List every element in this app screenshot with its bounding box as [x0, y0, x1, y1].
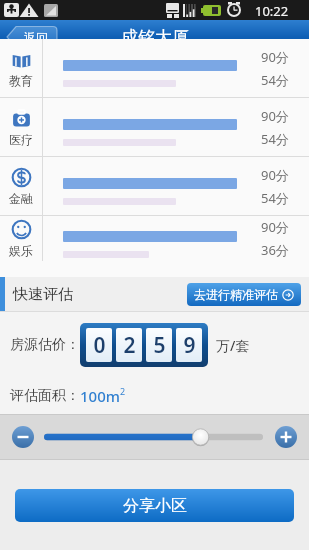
staticText: 房源估价：: [10, 336, 80, 354]
staticText: 10:22: [255, 2, 289, 20]
button[interactable]: 增加面积: [275, 426, 297, 448]
staticText: 100m: [80, 386, 120, 406]
staticText: 54分: [261, 189, 289, 207]
staticText: 90分: [261, 218, 289, 236]
button[interactable]: 金融: [0, 157, 309, 215]
staticText: 90分: [261, 166, 289, 184]
staticText: 90分: [261, 107, 289, 125]
button[interactable]: 去进行精准评估: [187, 283, 301, 306]
button[interactable]: 分享小区: [15, 489, 294, 522]
button[interactable]: 减少面积: [12, 426, 34, 448]
staticText: 0: [93, 331, 106, 360]
button[interactable]: 医疗: [0, 98, 309, 156]
staticText: 9: [183, 331, 196, 360]
staticText: 评估面积：: [10, 387, 80, 405]
button[interactable]: 娱乐: [0, 216, 309, 261]
staticText: 去进行精准评估: [194, 287, 278, 302]
staticText: 5: [153, 331, 166, 360]
staticText: 36分: [261, 241, 289, 259]
staticText: 分享小区: [123, 496, 187, 516]
staticText: 90分: [261, 48, 289, 66]
staticText: 2: [120, 385, 126, 397]
staticText: 54分: [261, 71, 289, 89]
staticText: 2: [123, 331, 136, 360]
staticText: 金融: [9, 191, 33, 206]
staticText: 54分: [261, 130, 289, 148]
staticText: 返回: [24, 30, 48, 45]
staticText: 万/套: [216, 336, 250, 355]
staticText: 快速评估: [13, 285, 73, 304]
staticText: 娱乐: [9, 243, 33, 258]
button[interactable]: 面积滑块: [44, 425, 263, 449]
button[interactable]: 返回: [7, 25, 57, 49]
button[interactable]: 教育: [0, 39, 309, 97]
staticText: 教育: [9, 73, 33, 88]
staticText: 成铭大厦: [121, 27, 189, 48]
staticText: 医疗: [9, 132, 33, 147]
